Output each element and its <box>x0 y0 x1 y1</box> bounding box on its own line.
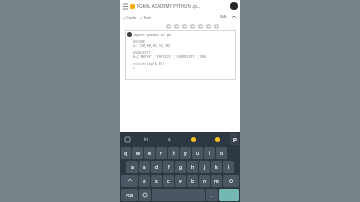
button[interactable]: Backspace <box>223 175 239 187</box>
button[interactable]: c <box>163 175 174 187</box>
staticText: i <box>209 150 211 157</box>
button[interactable]: w <box>132 147 143 159</box>
button[interactable]: a <box>126 161 138 173</box>
button[interactable]: m <box>211 175 222 187</box>
staticText: in <box>144 136 148 142</box>
button[interactable]: + Text <box>140 15 152 20</box>
button[interactable]: Shift <box>121 175 138 187</box>
staticText: u <box>196 150 200 157</box>
staticText: #SCORE <box>133 39 145 43</box>
staticText: import pandas as pd <box>133 32 171 36</box>
button[interactable]: Run cell <box>127 32 132 37</box>
staticText: d <box>155 164 159 171</box>
button[interactable]: Cell action 6 <box>214 24 219 29</box>
staticText: FOKAL ACADEMY PYTHON .ip… <box>137 3 230 9</box>
button[interactable]: Cell action 4 <box>198 24 203 29</box>
button[interactable]: i <box>204 147 215 159</box>
button[interactable]: Emoji suggestion 2 <box>205 132 229 146</box>
staticText: A= [90,80,85,93,98] <box>133 43 171 47</box>
staticText: p <box>233 135 237 143</box>
button[interactable]: + Code <box>123 15 136 20</box>
staticText: h <box>191 164 195 171</box>
button[interactable]: y <box>180 147 191 159</box>
staticText: r <box>160 150 163 157</box>
button[interactable]: d <box>151 161 162 173</box>
button[interactable]: t <box>168 147 179 159</box>
staticText: x <box>155 178 158 185</box>
button[interactable]: x <box>151 175 162 187</box>
staticText: l <box>228 164 230 171</box>
button[interactable]: Enter <box>219 189 239 201</box>
button[interactable]: l <box>223 161 234 173</box>
button[interactable]: Cell action 1 <box>174 24 179 29</box>
staticText: a <box>168 136 171 142</box>
staticText: c <box>133 65 135 69</box>
button[interactable]: Cell action 0 <box>166 24 171 29</box>
staticText: b <box>191 178 195 185</box>
button[interactable]: e <box>144 147 155 159</box>
button[interactable]: q <box>121 147 131 159</box>
button[interactable]: Emoji <box>139 189 151 201</box>
staticText: #SUBJECTS <box>133 50 151 54</box>
button[interactable]: r <box>156 147 167 159</box>
button[interactable]: p <box>230 133 239 145</box>
staticText: a <box>131 164 134 171</box>
staticText: w <box>136 150 140 157</box>
staticText: v <box>179 178 182 185</box>
button[interactable]: v <box>175 175 186 187</box>
button[interactable]: k <box>211 161 222 173</box>
staticText: c <box>167 178 170 185</box>
button[interactable]: in <box>134 132 157 146</box>
button[interactable]: Cell action 2 <box>182 24 187 29</box>
button[interactable]: . <box>206 189 218 201</box>
staticText: RAM <box>220 15 227 19</box>
staticText: ?123 <box>126 193 134 198</box>
button[interactable]: o <box>216 147 227 159</box>
staticText: e <box>148 150 151 157</box>
staticText: k <box>215 164 218 171</box>
button[interactable]: Collapse <box>231 14 237 20</box>
staticText: q <box>124 150 128 157</box>
button[interactable]: b <box>187 175 198 187</box>
button[interactable]: Menu <box>122 3 129 10</box>
staticText: t <box>173 150 175 157</box>
button[interactable]: z <box>139 175 150 187</box>
staticText: o <box>220 150 224 157</box>
button[interactable]: ?123 <box>121 189 138 201</box>
button[interactable]: Account <box>230 2 238 10</box>
staticText: c=list(zip(A,B)) <box>133 61 165 65</box>
button[interactable]: Clipboard <box>120 132 134 146</box>
staticText: n <box>203 178 207 185</box>
button[interactable]: h <box>187 161 198 173</box>
staticText: f <box>168 164 170 171</box>
staticText: B=['MATHS','PHYSICS','CHEMISTRY','ENG <box>133 54 207 58</box>
button[interactable]: n <box>199 175 210 187</box>
staticText: g <box>179 164 183 171</box>
staticText: s <box>143 164 146 171</box>
button[interactable]: f <box>163 161 174 173</box>
button[interactable]: s <box>139 161 150 173</box>
staticText: m <box>214 178 219 185</box>
button[interactable]: Emoji suggestion 1 <box>181 132 205 146</box>
staticText: y <box>184 150 187 157</box>
button[interactable]: Cell action 3 <box>190 24 195 29</box>
button[interactable]: a <box>157 132 181 146</box>
button[interactable]: j <box>199 161 210 173</box>
staticText: j <box>204 164 206 171</box>
staticText: . <box>211 192 213 199</box>
button[interactable]: g <box>175 161 186 173</box>
button[interactable]: Cell action 5 <box>206 24 211 29</box>
button[interactable]: u <box>192 147 203 159</box>
staticText: z <box>143 178 146 185</box>
